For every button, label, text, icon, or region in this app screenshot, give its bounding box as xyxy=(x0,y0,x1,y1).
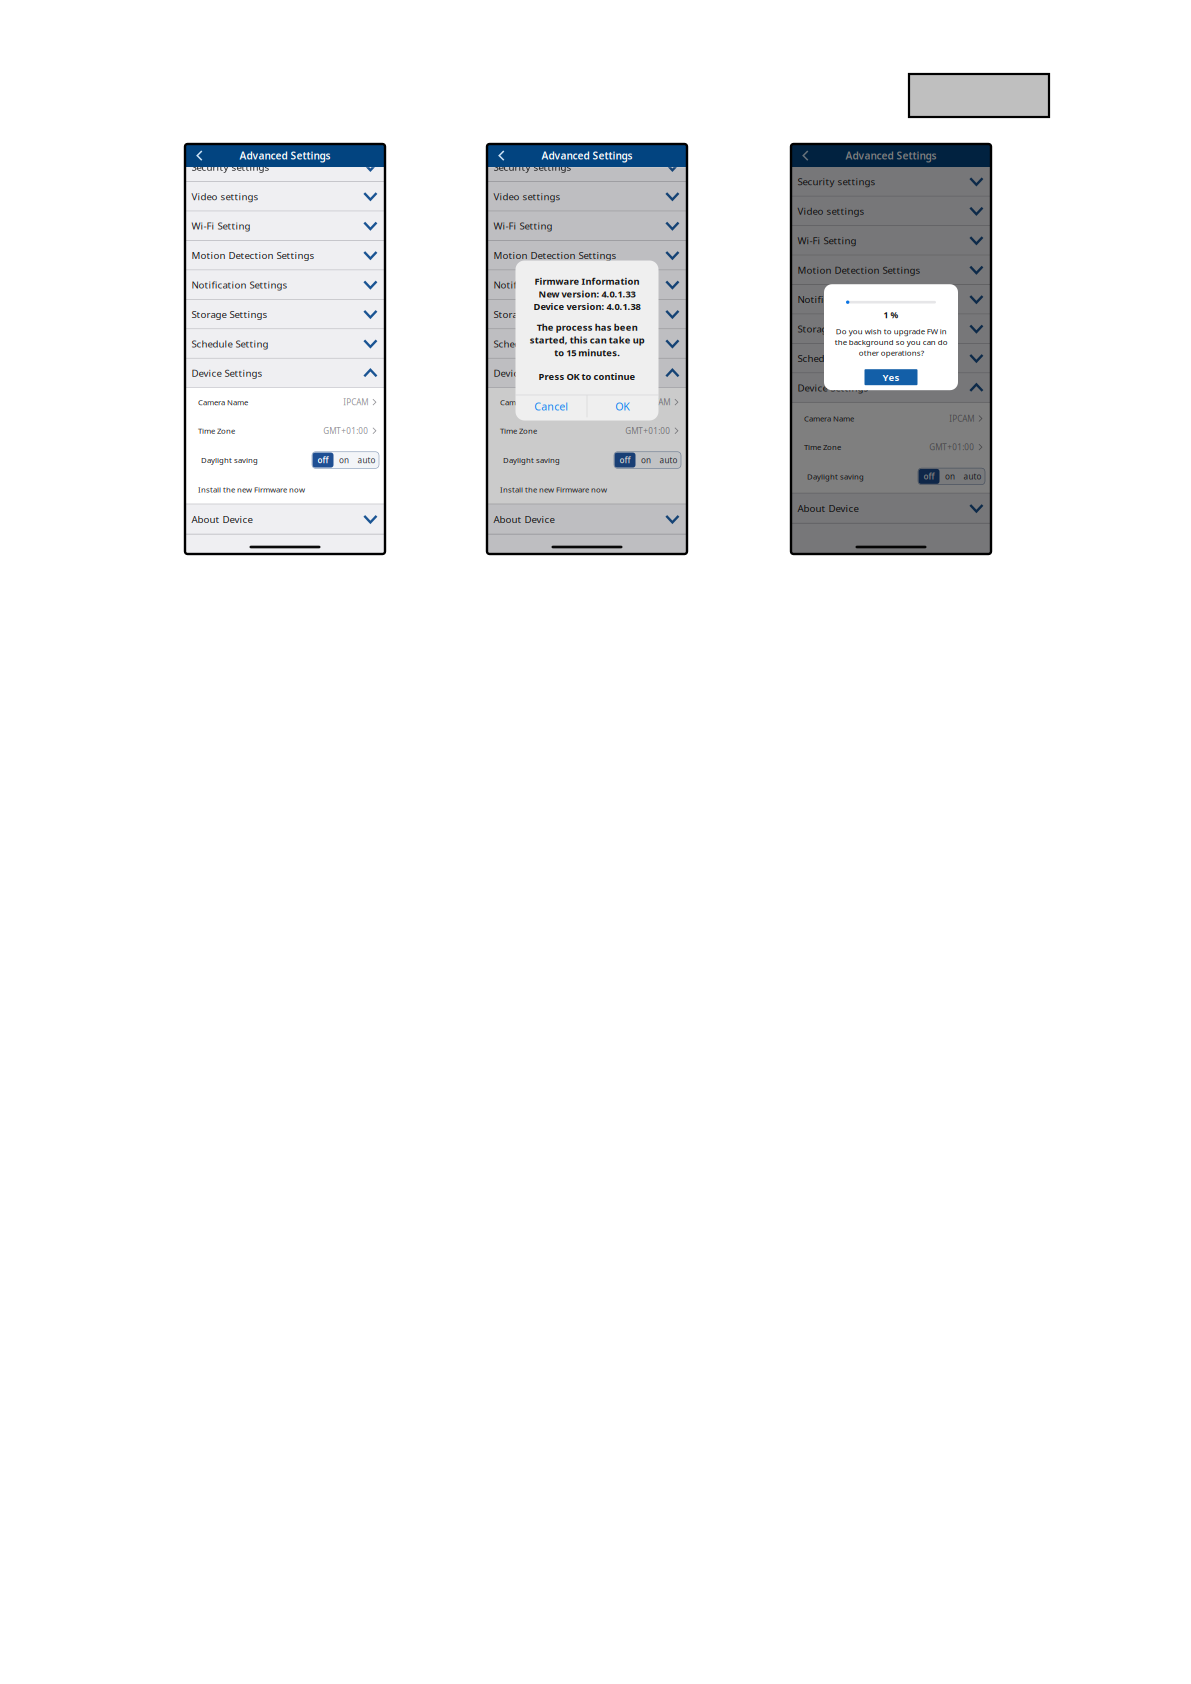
staticText: Wi-Fi Setting xyxy=(191,219,250,232)
button[interactable]: Device Settings xyxy=(487,359,687,387)
button[interactable]: Video settings xyxy=(185,182,385,211)
staticText: Motion Detection Settings xyxy=(493,249,616,262)
button[interactable]: Notification Settings xyxy=(487,270,687,299)
staticText: Video settings xyxy=(797,204,864,218)
staticText: Install the new Firmware now xyxy=(198,484,305,495)
button[interactable]: About Device xyxy=(487,504,687,534)
staticText: auto xyxy=(659,454,677,466)
button[interactable]: Security settings xyxy=(791,167,991,196)
staticText: IPCAM xyxy=(645,397,670,408)
staticText: Notification Settings xyxy=(191,278,287,291)
button[interactable]: Storage Settings xyxy=(487,300,687,328)
button[interactable]: Yes xyxy=(864,369,917,385)
staticText: Storage Settings xyxy=(191,307,267,321)
staticText: Device Settings xyxy=(797,381,868,394)
staticText: off xyxy=(619,454,630,466)
staticText: Daylight saving xyxy=(201,455,258,465)
button[interactable]: Motion Detection Settings xyxy=(791,256,991,284)
button[interactable]: Cancel xyxy=(516,395,587,417)
button[interactable]: on xyxy=(333,452,354,467)
button[interactable]: Motion Detection Settings xyxy=(185,241,385,269)
staticText: Notification Settings xyxy=(797,293,893,306)
staticText: Wi-Fi Setting xyxy=(493,219,552,232)
button[interactable]: Back xyxy=(185,144,214,167)
button[interactable]: Camera Name xyxy=(791,404,991,433)
staticText: Do you wish to upgrade FW in the backgro… xyxy=(834,326,947,358)
staticText: Yes xyxy=(882,371,899,384)
button[interactable]: Video settings xyxy=(791,197,991,225)
staticText: Time Zone xyxy=(198,425,235,436)
staticText: About Device xyxy=(493,512,554,526)
staticText: IPCAM xyxy=(949,413,974,424)
button[interactable]: Video settings xyxy=(487,182,687,211)
staticText: Schedule Setting xyxy=(493,337,570,350)
staticText: Time Zone xyxy=(500,425,537,436)
staticText: off xyxy=(317,454,328,466)
button[interactable]: Back xyxy=(791,144,820,167)
staticText: Advanced Settings xyxy=(845,149,936,162)
button[interactable]: Device Settings xyxy=(791,373,991,402)
staticText: Device Settings xyxy=(493,366,564,380)
staticText: Firmware Information xyxy=(534,275,639,287)
button[interactable]: Back xyxy=(487,144,516,167)
staticText: Press OK to continue xyxy=(538,370,635,383)
staticText: Advanced Settings xyxy=(239,149,330,162)
staticText: Daylight saving xyxy=(503,455,560,465)
button[interactable]: Install the new Firmware now xyxy=(185,475,385,504)
button[interactable]: Camera Name xyxy=(185,388,385,416)
staticText: Storage Settings xyxy=(797,322,873,335)
button[interactable]: Wi-Fi Setting xyxy=(487,211,687,240)
staticText: Wi-Fi Setting xyxy=(797,234,856,247)
button[interactable]: Notification Settings xyxy=(185,270,385,299)
button[interactable]: Wi-Fi Setting xyxy=(185,211,385,240)
staticText: GMT+01:00 xyxy=(625,425,670,436)
button[interactable]: OK xyxy=(587,395,658,417)
button[interactable]: Schedule Setting xyxy=(487,329,687,358)
button[interactable]: Wi-Fi Setting xyxy=(791,226,991,255)
button[interactable]: Schedule Setting xyxy=(791,344,991,372)
staticText: off xyxy=(923,471,934,482)
button[interactable]: Motion Detection Settings xyxy=(487,241,687,269)
staticText: Schedule Setting xyxy=(191,337,268,350)
button[interactable]: Time Zone xyxy=(791,433,991,461)
staticText: on xyxy=(945,471,955,482)
staticText: OK xyxy=(615,399,630,413)
button[interactable]: Camera Name xyxy=(487,388,687,416)
button[interactable]: auto xyxy=(960,469,984,484)
staticText: Time Zone xyxy=(804,442,841,452)
staticText: GMT+01:00 xyxy=(323,425,368,436)
staticText: Video settings xyxy=(493,190,560,203)
button[interactable]: About Device xyxy=(791,494,991,523)
button[interactable]: Device Settings xyxy=(185,359,385,387)
button[interactable]: Storage Settings xyxy=(791,314,991,343)
staticText: on xyxy=(641,454,651,466)
staticText: About Device xyxy=(191,512,252,526)
staticText: 1 % xyxy=(883,309,898,321)
staticText: About Device xyxy=(797,502,858,515)
button[interactable]: Notification Settings xyxy=(791,285,991,314)
staticText: Security settings xyxy=(493,160,571,174)
button[interactable]: on xyxy=(939,469,960,484)
button[interactable]: Time Zone xyxy=(185,416,385,445)
staticText: Install the new Firmware now xyxy=(500,484,607,495)
staticText: Camera Name xyxy=(500,397,550,407)
staticText: Video settings xyxy=(191,190,258,203)
staticText: The process has been started, this can t… xyxy=(529,321,644,359)
button[interactable]: off xyxy=(918,469,939,484)
button[interactable]: Time Zone xyxy=(487,416,687,445)
button[interactable]: on xyxy=(635,452,656,467)
button[interactable]: off xyxy=(312,452,333,467)
button[interactable]: Install the new Firmware now xyxy=(487,475,687,504)
staticText: Notification Settings xyxy=(493,278,589,291)
button[interactable]: About Device xyxy=(185,504,385,534)
button[interactable]: auto xyxy=(354,452,378,467)
button[interactable]: auto xyxy=(656,452,680,467)
button[interactable]: off xyxy=(614,452,635,467)
staticText: Cancel xyxy=(534,399,568,413)
staticText: New version: 4.0.1.33 xyxy=(538,287,635,300)
staticText: Daylight saving xyxy=(807,471,864,482)
staticText: GMT+01:00 xyxy=(929,442,974,453)
button[interactable]: Storage Settings xyxy=(185,300,385,328)
button[interactable]: Schedule Setting xyxy=(185,329,385,358)
staticText: Storage Settings xyxy=(493,307,569,321)
